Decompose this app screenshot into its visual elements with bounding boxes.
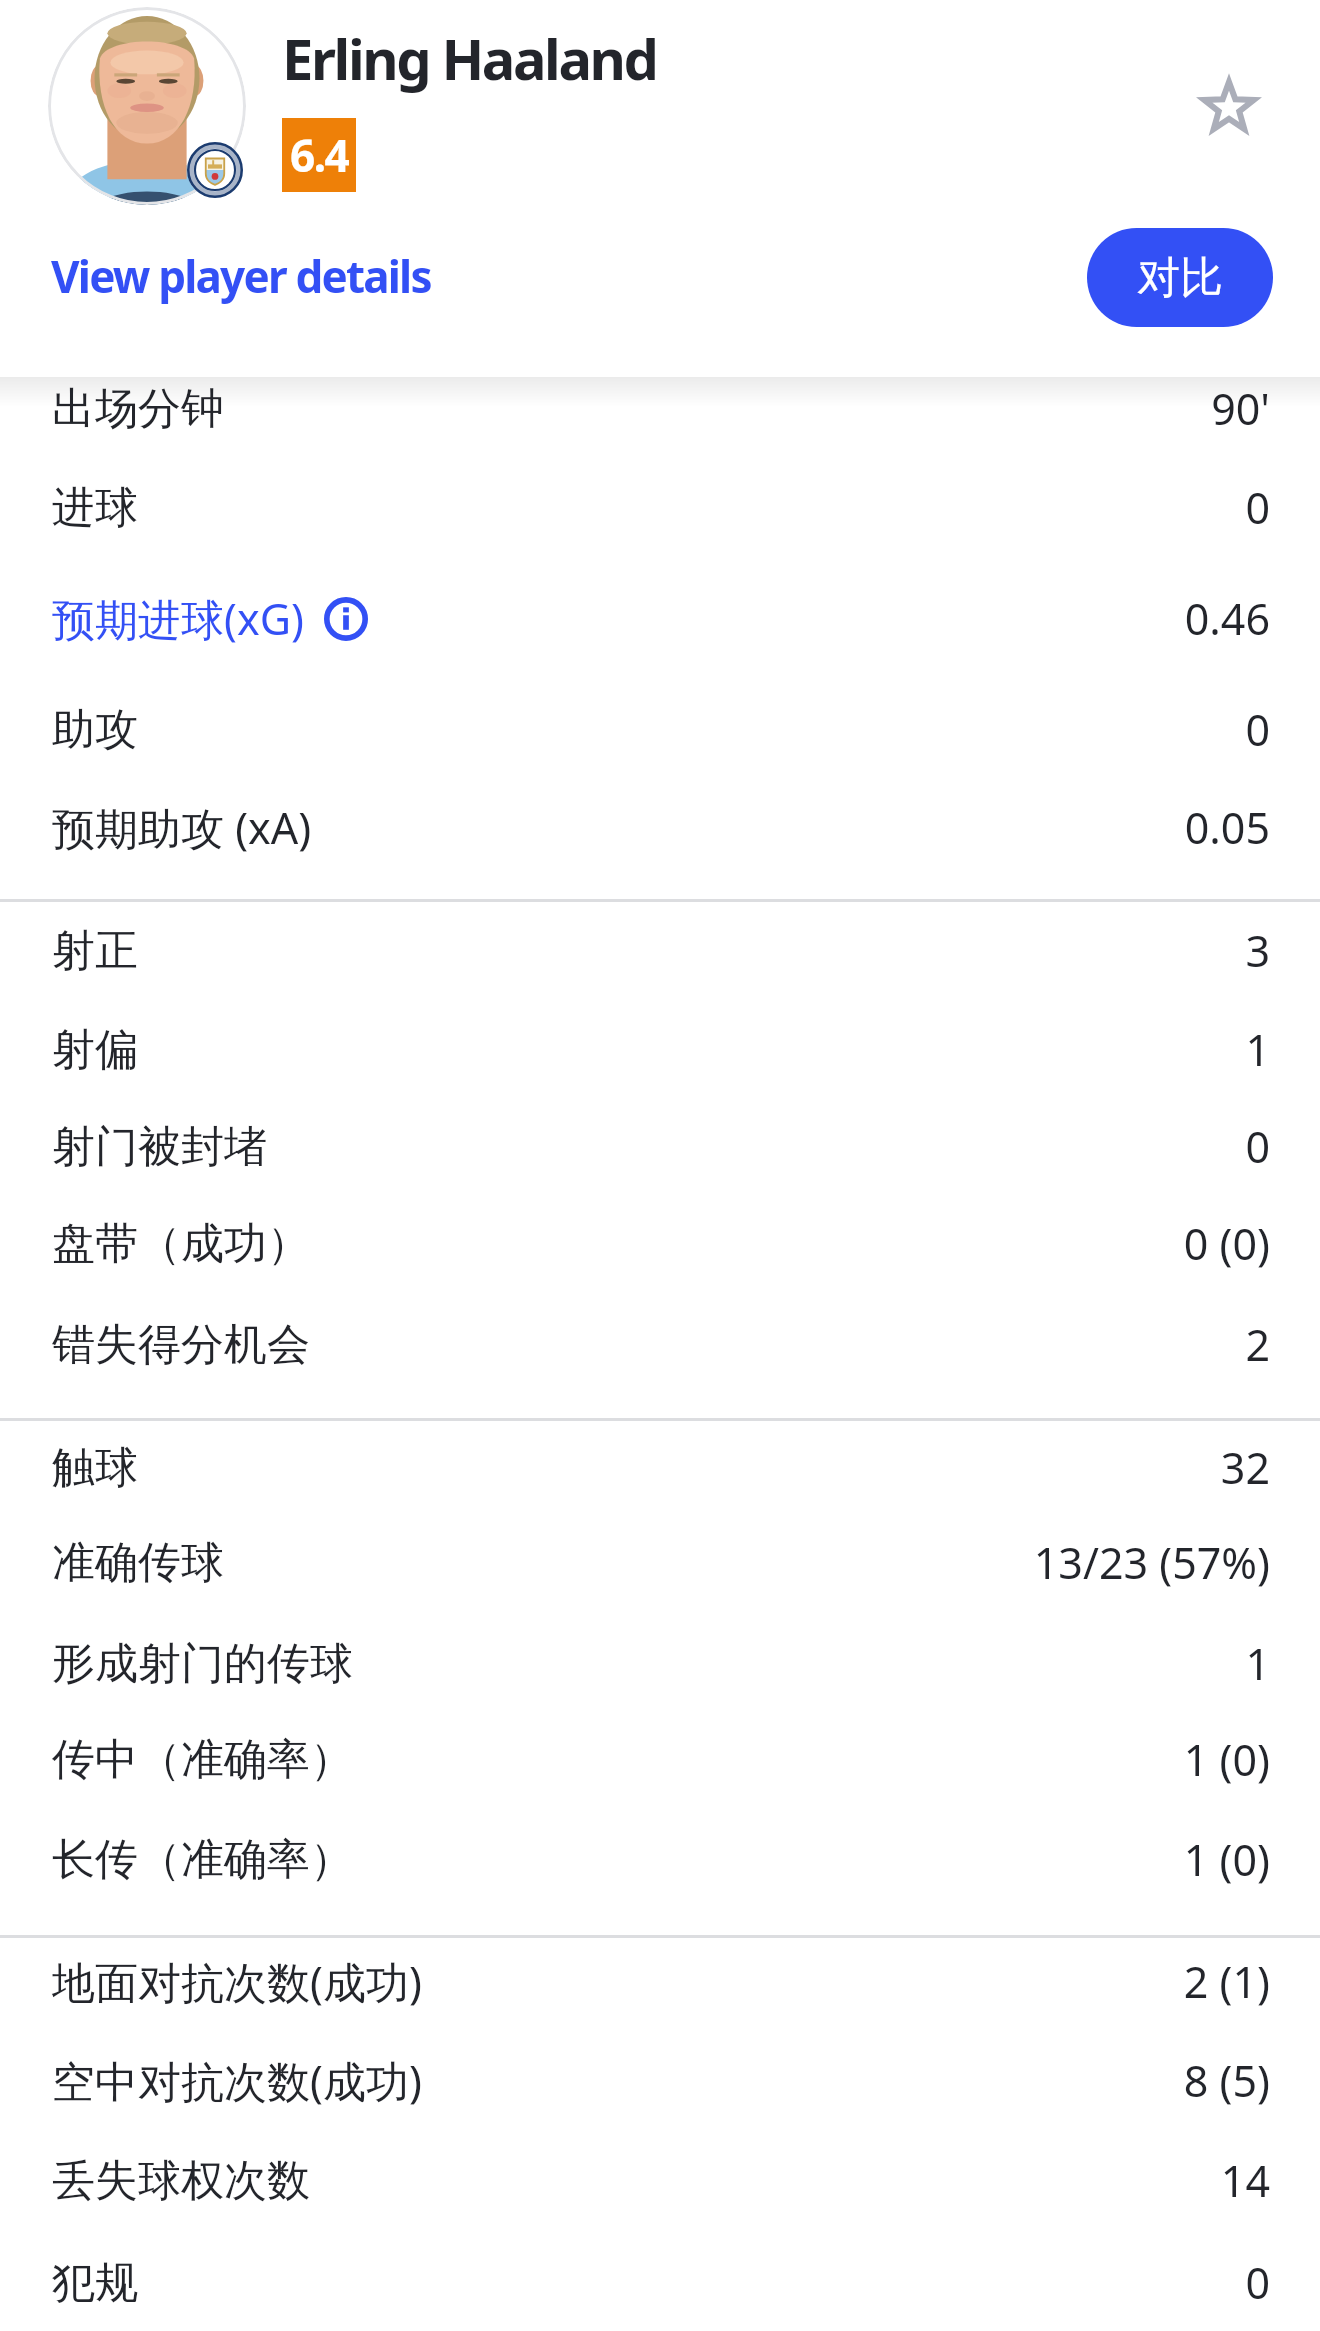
button[interactable]: View player details — [51, 246, 431, 306]
button[interactable]: 形成射门的传球 — [0, 1614, 1320, 1713]
staticText: 8 (5) — [1183, 2051, 1270, 2110]
staticText: 射正 — [52, 924, 138, 978]
staticText: View player details — [51, 246, 431, 306]
staticText: 准确传球 — [52, 1536, 224, 1590]
staticText: 射偏 — [52, 1023, 138, 1077]
staticText: 预期助攻 (xA) — [52, 798, 312, 857]
staticText: 错失得分机会 — [52, 1318, 310, 1372]
staticText: 1 (0) — [1183, 1830, 1270, 1889]
button[interactable]: 进球 — [0, 458, 1320, 557]
button[interactable]: 准确传球 — [0, 1513, 1320, 1612]
staticText: 空中对抗次数(成功) — [52, 2051, 422, 2110]
staticText: 0 — [1245, 478, 1270, 537]
staticText: 0.46 — [1184, 589, 1270, 648]
button[interactable]: 射正 — [0, 901, 1320, 1000]
staticText: 13/23 (57%) — [1033, 1533, 1270, 1592]
button[interactable]: 丢失球权次数 — [0, 2131, 1320, 2230]
button[interactable]: 射偏 — [0, 1000, 1320, 1099]
staticText: 0 — [1245, 2253, 1270, 2312]
staticText: 1 — [1245, 1634, 1270, 1693]
staticText: 2 (1) — [1183, 1952, 1270, 2011]
staticText: 长传（准确率） — [52, 1833, 353, 1887]
staticText: 2 — [1245, 1315, 1270, 1374]
staticText: 0 — [1245, 700, 1270, 759]
staticText: Erling Haaland — [282, 20, 657, 96]
staticText: 1 — [1245, 1020, 1270, 1079]
staticText: 0.05 — [1184, 798, 1270, 857]
staticText: 触球 — [52, 1441, 138, 1495]
staticText: 出场分钟 — [52, 382, 224, 436]
staticText: 传中（准确率） — [52, 1733, 353, 1787]
button[interactable]: 错失得分机会 — [0, 1295, 1320, 1394]
button[interactable]: 出场分钟 — [0, 359, 1320, 458]
staticText: 1 (0) — [1183, 1730, 1270, 1789]
staticText: 地面对抗次数(成功) — [52, 1952, 422, 2011]
button[interactable]: 传中（准确率） — [0, 1710, 1320, 1809]
button[interactable]: 射门被封堵 — [0, 1097, 1320, 1196]
staticText: 90' — [1211, 379, 1270, 438]
button[interactable]: 地面对抗次数(成功) — [0, 1932, 1320, 2031]
button[interactable]: 助攻 — [0, 680, 1320, 779]
button[interactable]: Add to favourites — [1189, 67, 1269, 147]
staticText: 0 (0) — [1183, 1214, 1270, 1273]
staticText: 丢失球权次数 — [52, 2154, 310, 2208]
button[interactable]: 预期助攻 (xA) — [0, 778, 1320, 877]
button[interactable]: 犯规 — [0, 2233, 1320, 2331]
button[interactable]: 盘带（成功） — [0, 1194, 1320, 1293]
button[interactable]: 对比 — [1087, 228, 1273, 327]
button[interactable]: 空中对抗次数(成功) — [0, 2031, 1320, 2130]
staticText: 3 — [1245, 921, 1270, 980]
staticText: 犯规 — [52, 2256, 138, 2310]
staticText: 32 — [1220, 1438, 1270, 1497]
button[interactable]: 长传（准确率） — [0, 1810, 1320, 1909]
staticText: 进球 — [52, 481, 138, 535]
button[interactable]: 预期进球(xG) — [0, 557, 1320, 680]
staticText: 0 — [1245, 1117, 1270, 1176]
staticText: 射门被封堵 — [52, 1120, 267, 1174]
staticText: 预期进球(xG) — [52, 589, 304, 648]
staticText: 14 — [1220, 2151, 1270, 2210]
button[interactable]: Erling Haaland photo — [48, 7, 246, 205]
staticText: 助攻 — [52, 703, 138, 757]
staticText: 形成射门的传球 — [52, 1637, 353, 1691]
staticText: 6.4 — [290, 125, 349, 185]
staticText: 对比 — [1137, 251, 1223, 305]
button[interactable]: 触球 — [0, 1418, 1320, 1517]
staticText: 盘带（成功） — [52, 1217, 310, 1271]
